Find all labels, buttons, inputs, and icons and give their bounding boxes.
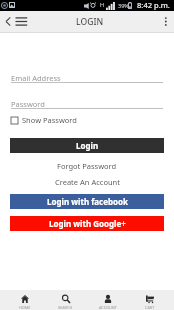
button[interactable]: Login [10,138,164,153]
staticText: Forgot Password [57,161,117,171]
button[interactable]: Forgot Password [0,161,174,171]
button[interactable]: Login with facebook [10,194,164,209]
staticText: Password [11,99,45,109]
staticText: Email Address [11,73,61,83]
button[interactable]: Navigate up and open navigation menu [0,11,31,32]
button[interactable]: CART [130,290,170,310]
button[interactable]: SEARCH [45,290,85,310]
staticText: 39% [118,2,129,9]
button[interactable]: ACCOUNT [88,290,128,310]
staticText: 8:42 p.m. [137,0,170,10]
staticText: ACCOUNT [99,305,117,310]
button[interactable]: HOME [5,290,45,310]
staticText: Login with Google+ [49,218,126,229]
staticText: Show Password [22,115,77,125]
button[interactable]: Show Password [11,115,77,125]
staticText: Login [76,140,99,151]
button[interactable]: More options [156,11,174,32]
staticText: SEARCH [58,305,73,310]
staticText: H [100,1,105,8]
staticText: HOME [19,305,31,310]
staticText: Create An Account [55,177,120,187]
staticText: LOGIN [76,16,104,28]
button[interactable]: Create An Account [0,177,174,187]
button[interactable]: Login with Google+ [10,216,164,231]
staticText: CART [145,305,155,310]
staticText: Login with facebook [47,196,128,207]
